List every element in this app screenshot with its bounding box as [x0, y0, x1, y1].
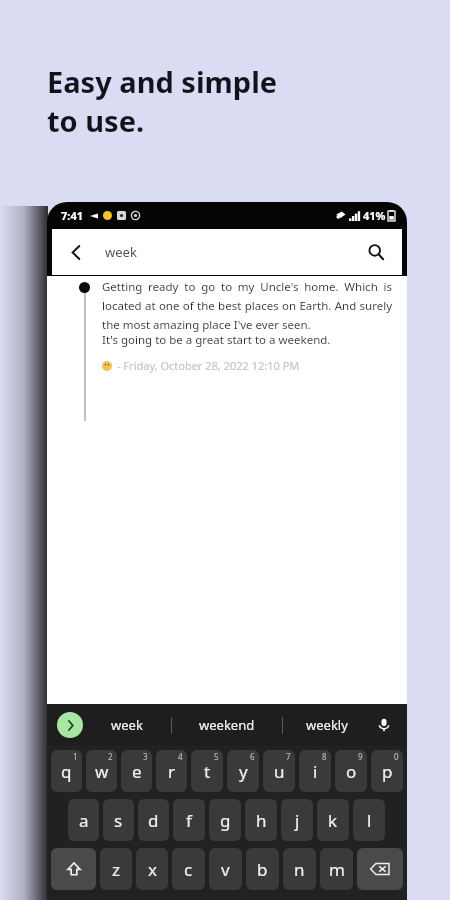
button[interactable]: w [86, 750, 117, 792]
staticText: t [204, 760, 211, 783]
staticText: 7 [286, 751, 291, 762]
button[interactable]: Back [52, 229, 402, 275]
staticText: 0 [394, 751, 399, 762]
staticText: i [313, 760, 318, 783]
button[interactable]: z [100, 848, 132, 890]
button[interactable]: q [51, 750, 82, 792]
staticText: d [148, 809, 159, 832]
staticText: 9 [358, 751, 363, 762]
staticText: j [295, 809, 300, 832]
button[interactable]: u [263, 750, 295, 792]
button[interactable]: Voice input [371, 712, 397, 738]
staticText: h [256, 809, 267, 832]
staticText: 4 [178, 751, 183, 762]
staticText: c [184, 858, 193, 881]
staticText: week [105, 243, 137, 261]
staticText: 6 [250, 751, 255, 762]
button[interactable]: e [121, 750, 152, 792]
button[interactable]: weekly [283, 704, 371, 746]
staticText: 2 [108, 751, 113, 762]
staticText: It's going to be a great start to a week… [102, 332, 331, 348]
staticText: f [186, 809, 192, 832]
button[interactable]: j [281, 799, 313, 841]
staticText: q [61, 760, 72, 783]
staticText: 41% [363, 208, 386, 223]
button[interactable]: i [299, 750, 331, 792]
staticText: l [367, 809, 372, 832]
staticText: 7:41 [61, 208, 83, 223]
staticText: r [168, 760, 176, 783]
staticText: weekend [199, 716, 255, 734]
button[interactable]: d [138, 799, 169, 841]
button[interactable]: week [83, 704, 171, 746]
button[interactable]: r [156, 750, 187, 792]
button[interactable]: b [246, 848, 279, 890]
button[interactable]: f [173, 799, 205, 841]
button[interactable]: Search [363, 239, 389, 265]
staticText: Easy and simple [47, 62, 278, 101]
button[interactable]: p [371, 750, 403, 792]
button[interactable]: x [136, 848, 168, 890]
staticText: weekly [306, 716, 348, 734]
staticText: y [239, 760, 248, 783]
button[interactable]: l [353, 799, 385, 841]
staticText: b [257, 858, 268, 881]
staticText: 1 [73, 751, 78, 762]
button[interactable]: Back [65, 241, 87, 263]
staticText: w [95, 760, 109, 783]
staticText: to use. [47, 101, 145, 140]
staticText: z [112, 858, 120, 881]
button[interactable]: o [335, 750, 367, 792]
button[interactable]: v [209, 848, 242, 890]
staticText: x [148, 858, 157, 881]
button[interactable]: g [209, 799, 241, 841]
staticText: k [328, 809, 338, 832]
button[interactable]: weekend [172, 704, 282, 746]
staticText: 3 [143, 751, 148, 762]
staticText: 8 [322, 751, 327, 762]
staticText: u [274, 760, 285, 783]
button[interactable]: n [283, 848, 316, 890]
button[interactable]: s [103, 799, 134, 841]
button[interactable]: k [317, 799, 349, 841]
button[interactable]: Shift [51, 848, 96, 890]
staticText: e [132, 760, 142, 783]
staticText: p [382, 760, 393, 783]
staticText: - Friday, October 28, 2022 12:10 PM [117, 358, 300, 373]
staticText: week [111, 716, 143, 734]
button[interactable]: a [68, 799, 99, 841]
button[interactable]: Expand toolbar [57, 712, 83, 738]
button[interactable]: Backspace [357, 848, 403, 890]
button[interactable]: h [245, 799, 277, 841]
button[interactable]: t [191, 750, 223, 792]
button[interactable]: m [320, 848, 353, 890]
staticText: m [329, 858, 345, 881]
staticText: n [294, 858, 305, 881]
button[interactable]: Getting ready to go to my Uncle's home. … [47, 276, 407, 704]
staticText: v [221, 858, 230, 881]
staticText: a [79, 809, 89, 832]
button[interactable]: c [172, 848, 205, 890]
staticText: o [346, 760, 357, 783]
staticText: g [220, 809, 231, 832]
button[interactable]: y [227, 750, 259, 792]
staticText: Getting ready to go to my Uncle's home. … [102, 279, 392, 332]
staticText: 5 [214, 751, 219, 762]
staticText: s [114, 809, 123, 832]
